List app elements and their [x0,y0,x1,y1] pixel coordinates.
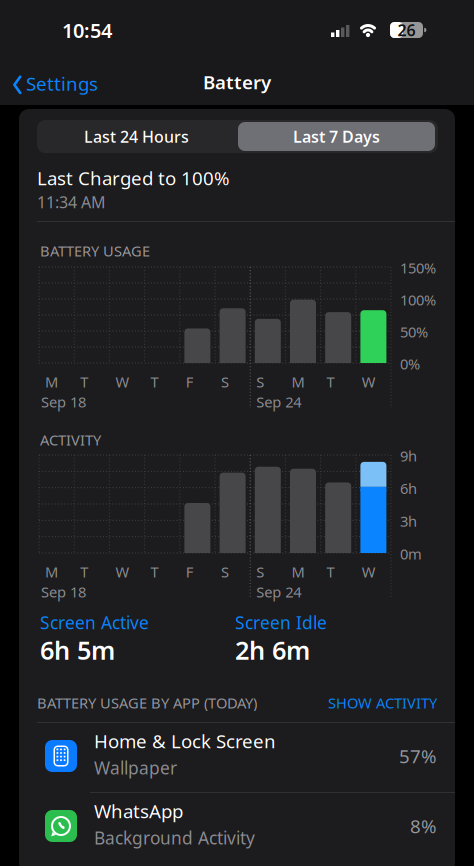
staticText: Screen Active [40,611,149,634]
staticText: BATTERY USAGE BY APP (TODAY) [37,693,257,712]
staticText: T [80,372,88,391]
staticText: F [186,372,194,391]
button[interactable]: Last 7 Days [237,120,436,153]
staticText: 100% [400,290,436,309]
staticText: 6h [400,479,417,498]
staticText: 57% [399,744,437,768]
staticText: Sep 24 [256,392,301,411]
staticText: M [45,562,58,581]
staticText: SHOW ACTIVITY [328,693,437,712]
staticText: 150% [400,258,436,277]
staticText: 26 [397,19,415,41]
staticText: S [221,372,229,391]
staticText: 50% [400,322,428,341]
staticText: W [115,372,129,391]
staticText: 8% [410,814,437,838]
staticText: W [362,372,376,391]
staticText: T [80,562,88,581]
staticText: Last 7 Days [293,126,380,147]
button[interactable]: WhatsApp [19,792,455,860]
staticText: 0% [400,354,420,373]
staticText: 2h 6m [235,633,310,667]
staticText: Sep 18 [41,582,86,601]
staticText: S [256,562,264,581]
staticText: ACTIVITY [40,430,101,449]
staticText: 0m [400,544,422,563]
button[interactable]: Last 24 Hours [37,120,236,153]
staticText: 6h 5m [40,633,115,667]
staticText: Home & Lock Screen [94,729,276,753]
staticText: 9h [400,446,417,465]
staticText: Settings [26,71,98,96]
staticText: M [291,562,304,581]
staticText: WhatsApp [94,799,183,823]
staticText: T [151,562,159,581]
staticText: 10:54 [62,17,112,44]
button[interactable]: Home & Lock Screen [19,722,455,790]
button[interactable]: SHOW ACTIVITY [328,693,437,712]
staticText: M [45,372,58,391]
staticText: T [327,372,335,391]
staticText: S [221,562,229,581]
staticText: S [256,372,264,391]
button[interactable]: Back to Settings [0,0,90,25]
staticText: Last Charged to 100% [37,165,230,190]
staticText: T [151,372,159,391]
staticText: F [186,562,194,581]
staticText: 11:34 AM [37,191,106,213]
staticText: T [327,562,335,581]
staticText: Sep 24 [256,582,301,601]
staticText: Background Activity [94,826,255,849]
staticText: W [115,562,129,581]
staticText: M [291,372,304,391]
staticText: BATTERY USAGE [40,241,150,260]
staticText: Sep 18 [41,392,86,411]
staticText: 3h [400,511,417,531]
staticText: Screen Idle [235,611,327,634]
staticText: Last 24 Hours [84,126,189,147]
staticText: Wallpaper [94,756,177,779]
staticText: Battery [203,69,271,94]
staticText: W [362,562,376,581]
